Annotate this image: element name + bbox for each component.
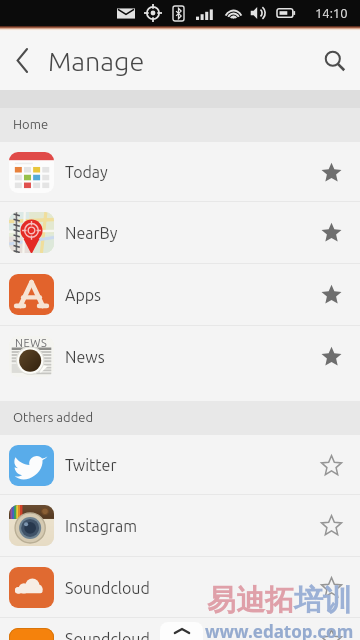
staticText: Others added <box>13 410 94 425</box>
staticText: Manage <box>48 46 145 76</box>
staticText: 易迪拓 <box>207 582 294 619</box>
staticText: Home <box>13 117 49 132</box>
staticText: Soundcloud <box>65 579 150 597</box>
staticText: News <box>65 348 105 366</box>
button[interactable]: Search <box>310 31 360 90</box>
button[interactable]: Show more <box>160 622 203 640</box>
button[interactable]: Soundcloud <box>0 618 360 640</box>
staticText: 培训 <box>294 582 352 619</box>
staticText: NEWS <box>15 337 48 349</box>
staticText: 14:10 <box>315 6 348 21</box>
staticText: www.edatop.com <box>205 620 354 640</box>
button[interactable]: Back <box>0 31 44 90</box>
button[interactable]: NearBy <box>0 202 360 264</box>
button[interactable]: Soundcloud <box>0 557 360 618</box>
staticText: NearBy <box>65 224 118 242</box>
staticText: Today <box>65 163 108 181</box>
staticText: Soundcloud <box>65 630 150 640</box>
button[interactable]: Instagram <box>0 495 360 557</box>
button[interactable]: Apps <box>0 264 360 326</box>
staticText: Instagram <box>65 517 137 535</box>
staticText: Twitter <box>65 456 117 474</box>
button[interactable]: Today <box>0 142 360 202</box>
button[interactable]: NEWS <box>0 326 360 401</box>
button[interactable]: Twitter <box>0 435 360 495</box>
staticText: Apps <box>65 286 102 304</box>
